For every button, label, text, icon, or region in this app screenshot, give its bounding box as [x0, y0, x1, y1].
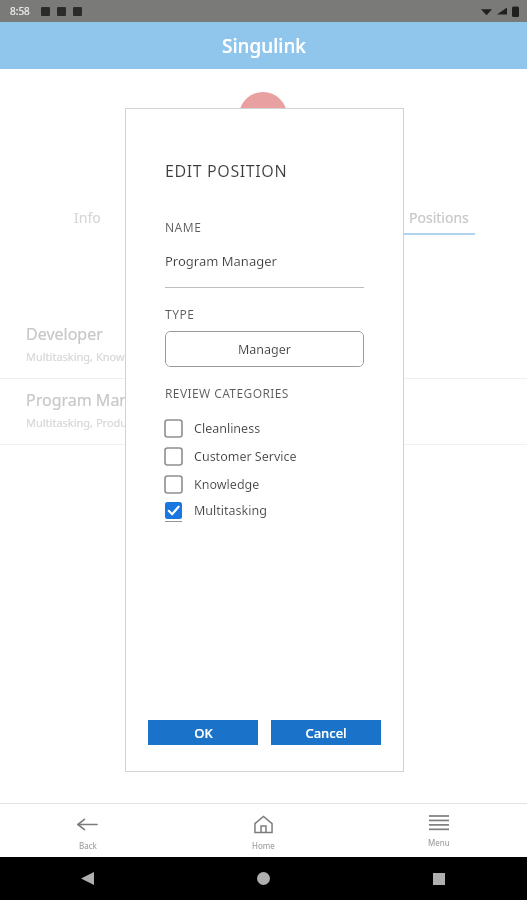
staticText: Cancel	[305, 724, 347, 742]
staticText: Singulink	[222, 33, 306, 59]
staticText: Manager	[238, 341, 291, 358]
button[interactable]: Multitasking	[125, 498, 404, 522]
staticText: Program Manager	[26, 389, 164, 411]
other: Home	[254, 815, 273, 834]
button[interactable]: Cleanliness	[125, 414, 404, 442]
button[interactable]: Back	[0, 804, 175, 851]
staticText: Menu	[428, 837, 450, 848]
other: Menu	[429, 815, 449, 831]
staticText: Back	[79, 840, 97, 851]
staticText: Customer Service	[194, 448, 297, 465]
button[interactable]: Customer Service	[125, 442, 404, 470]
staticText: Developer	[26, 323, 103, 345]
button[interactable]: Manager	[165, 331, 364, 367]
staticText: Home	[252, 840, 275, 851]
staticText: Program Manager	[165, 252, 277, 270]
button[interactable]: Cancel	[271, 720, 381, 745]
button[interactable]: Home	[175, 804, 351, 851]
staticText: Info	[74, 208, 101, 227]
staticText: TYPE	[165, 306, 195, 322]
button[interactable]: Program Manager	[0, 379, 527, 444]
button[interactable]: Menu	[351, 804, 527, 848]
staticText: REVIEW CATEGORIES	[165, 385, 289, 401]
staticText: 8:58	[10, 4, 30, 18]
staticText: Multitasking, Knowledge, Quality control	[26, 349, 236, 364]
button[interactable]: Developer	[0, 313, 527, 378]
other: Home	[257, 872, 270, 885]
staticText: Multitasking	[194, 502, 267, 519]
staticText: EDIT POSITION	[165, 160, 288, 182]
staticText: NAME	[165, 219, 202, 235]
staticText: Multitasking, Productivity, Quality cont…	[26, 415, 239, 430]
button[interactable]: Knowledge	[125, 470, 404, 498]
staticText: Knowledge	[194, 476, 260, 493]
button[interactable]: OK	[148, 720, 258, 745]
other: Back	[78, 815, 97, 834]
other: Back	[81, 872, 94, 885]
staticText: OK	[194, 724, 213, 742]
staticText: Cleanliness	[194, 420, 261, 437]
staticText: Positions	[409, 208, 469, 227]
